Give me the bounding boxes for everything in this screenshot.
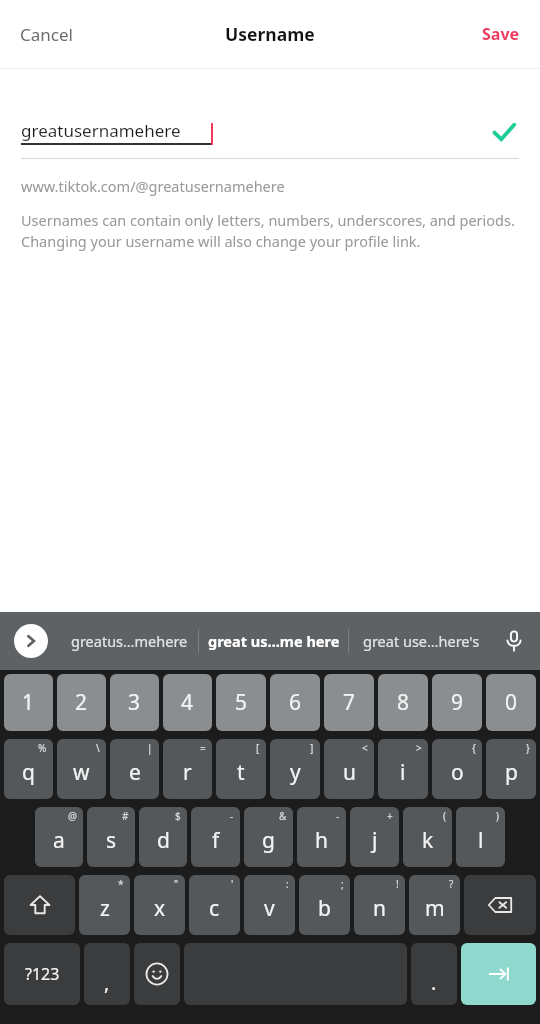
- staticText: 7: [343, 688, 356, 717]
- staticText: c: [209, 894, 220, 923]
- staticText: *: [118, 877, 124, 891]
- staticText: Usernames can contain only letters, numb…: [21, 210, 519, 251]
- staticText: s: [106, 826, 117, 855]
- other: Username available: [489, 117, 519, 147]
- staticText: k: [422, 826, 434, 855]
- button[interactable]: ): [456, 807, 505, 867]
- staticText: b: [318, 894, 331, 923]
- button[interactable]: :: [244, 875, 295, 935]
- staticText: =: [200, 741, 206, 755]
- staticText: q: [22, 758, 35, 787]
- button[interactable]: @: [35, 807, 83, 867]
- staticText: #: [122, 809, 129, 823]
- staticText: i: [400, 758, 406, 787]
- button[interactable]: great us…me here: [208, 631, 340, 651]
- staticText: a: [53, 826, 65, 855]
- staticText: y: [290, 758, 301, 787]
- staticText: |: [147, 741, 153, 755]
- button[interactable]: greatus…mehere: [71, 631, 188, 651]
- button[interactable]: -: [191, 807, 240, 867]
- button[interactable]: }: [486, 739, 536, 799]
- button[interactable]: ?123: [4, 943, 80, 1005]
- button[interactable]: 3: [110, 674, 159, 731]
- button[interactable]: *: [79, 875, 130, 935]
- button[interactable]: [: [216, 739, 266, 799]
- button[interactable]: 8: [378, 674, 428, 731]
- staticText: &: [279, 809, 287, 823]
- staticText: Save: [482, 23, 520, 45]
- button[interactable]: More suggestions: [14, 624, 48, 658]
- button[interactable]: &: [244, 807, 293, 867]
- button[interactable]: -: [297, 807, 346, 867]
- staticText: .: [431, 969, 437, 996]
- button[interactable]: 6: [270, 674, 320, 731]
- button[interactable]: 5: [216, 674, 266, 731]
- button[interactable]: |: [110, 739, 159, 799]
- staticText: {: [472, 741, 476, 755]
- button[interactable]: ]: [270, 739, 320, 799]
- staticText: www.tiktok.com/@greatusernamehere: [21, 176, 285, 196]
- staticText: 4: [181, 688, 194, 717]
- staticText: !: [396, 877, 399, 891]
- button[interactable]: (: [403, 807, 452, 867]
- staticText: 1: [22, 688, 35, 717]
- button[interactable]: %: [4, 739, 53, 799]
- button[interactable]: Save: [462, 11, 540, 57]
- staticText: f: [212, 826, 220, 855]
- button[interactable]: Emoji: [134, 943, 180, 1005]
- staticText: h: [315, 826, 328, 855]
- button[interactable]: 0: [486, 674, 536, 731]
- button[interactable]: <: [324, 739, 374, 799]
- staticText: 2: [75, 688, 88, 717]
- staticText: [: [256, 741, 260, 755]
- button[interactable]: Backspace: [464, 875, 536, 935]
- staticText: 5: [235, 688, 248, 717]
- staticText: m: [425, 894, 445, 923]
- button[interactable]: great use…here's: [363, 631, 480, 651]
- staticText: e: [129, 758, 141, 787]
- button[interactable]: Period: [411, 943, 457, 1005]
- button[interactable]: ': [189, 875, 240, 935]
- staticText: <: [362, 741, 368, 755]
- button[interactable]: Voice input: [494, 621, 534, 661]
- button[interactable]: >: [378, 739, 428, 799]
- button[interactable]: Next: [461, 943, 536, 1005]
- staticText: 0: [505, 688, 518, 717]
- button[interactable]: ;: [299, 875, 350, 935]
- button[interactable]: ": [134, 875, 185, 935]
- button[interactable]: {: [432, 739, 482, 799]
- button[interactable]: 1: [4, 674, 53, 731]
- button[interactable]: 2: [57, 674, 106, 731]
- staticText: (: [443, 809, 446, 823]
- button[interactable]: =: [163, 739, 212, 799]
- staticText: @: [68, 809, 77, 823]
- staticText: n: [373, 894, 386, 923]
- staticText: ,: [104, 969, 110, 996]
- button[interactable]: \: [57, 739, 106, 799]
- button[interactable]: !: [354, 875, 405, 935]
- staticText: Username: [225, 22, 315, 46]
- button[interactable]: $: [139, 807, 187, 867]
- staticText: l: [478, 826, 484, 855]
- button[interactable]: #: [87, 807, 135, 867]
- staticText: u: [343, 758, 356, 787]
- button[interactable]: 7: [324, 674, 374, 731]
- button[interactable]: ?: [409, 875, 460, 935]
- button[interactable]: 9: [432, 674, 482, 731]
- staticText: -: [336, 809, 340, 823]
- button[interactable]: +: [350, 807, 399, 867]
- staticText: -: [230, 809, 234, 823]
- staticText: o: [451, 758, 464, 787]
- staticText: 3: [128, 688, 141, 717]
- staticText: ]: [310, 741, 314, 755]
- staticText: >: [416, 741, 422, 755]
- staticText: %: [38, 741, 47, 755]
- button[interactable]: Cancel: [0, 11, 93, 58]
- button[interactable]: Comma: [84, 943, 130, 1005]
- button[interactable]: Shift: [4, 875, 75, 935]
- staticText: ): [496, 809, 499, 823]
- staticText: ?123: [25, 963, 60, 985]
- button[interactable]: 4: [163, 674, 212, 731]
- staticText: 8: [397, 688, 410, 717]
